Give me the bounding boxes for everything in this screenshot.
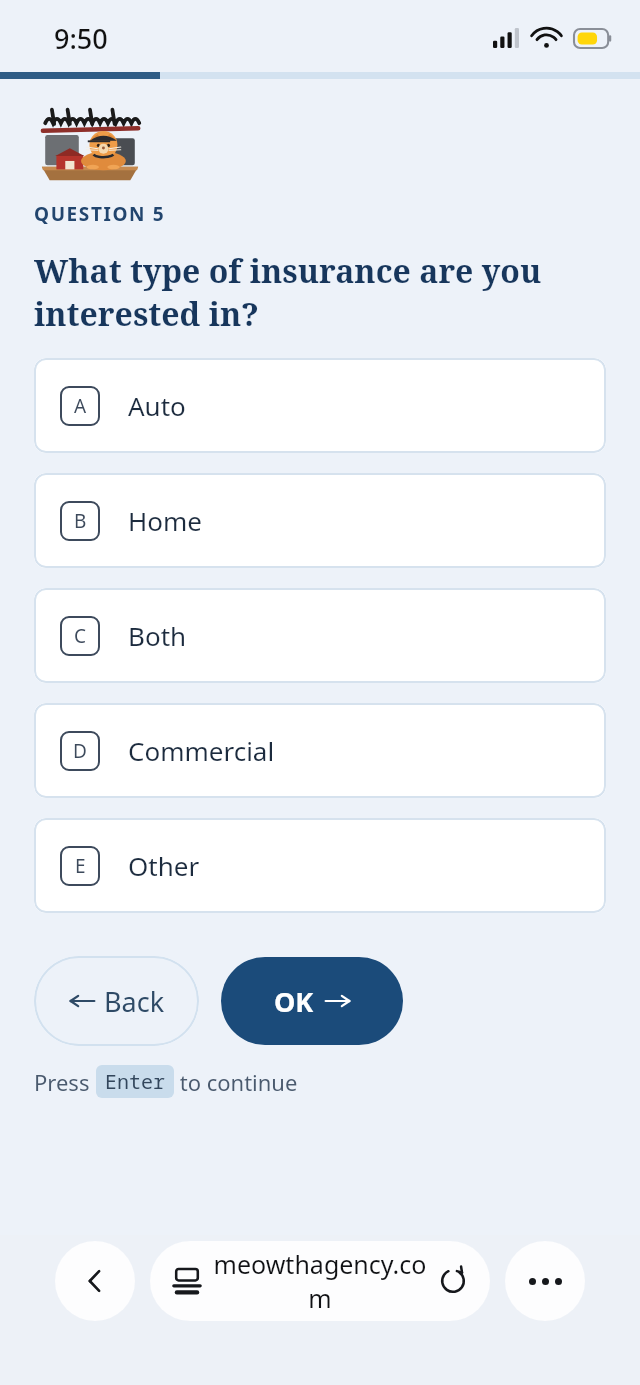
staticText: Auto [128,388,186,423]
button[interactable]: B [34,473,606,568]
staticText: Both [128,618,187,653]
staticText: What type of insurance are you intereste… [34,249,606,335]
staticText: B [74,508,87,534]
staticText: meowthagency.com [212,1247,428,1315]
staticText: QUESTION 5 [34,201,166,227]
staticText: D [73,738,87,764]
staticText: Back [104,983,165,1020]
staticText: Home [128,503,202,538]
button[interactable]: C [34,588,606,683]
button[interactable]: OK [221,957,403,1045]
staticText: Press [34,1067,96,1097]
staticText: E [75,853,86,879]
staticText: A [74,393,87,419]
button[interactable]: E [34,818,606,913]
staticText: C [74,623,87,649]
button[interactable]: meowthagency.com [150,1241,490,1321]
staticText: Commercial [128,733,275,768]
button[interactable]: Back [34,956,199,1046]
button[interactable]: Back [55,1241,135,1321]
button[interactable]: D [34,703,606,798]
staticText: 9:50 [54,20,108,57]
staticText: Other [128,848,200,883]
button[interactable]: A [34,358,606,453]
button[interactable]: More options [505,1241,585,1321]
staticText: Enter [105,1068,165,1095]
staticText: to continue [174,1067,298,1097]
staticText: OK [274,983,314,1020]
